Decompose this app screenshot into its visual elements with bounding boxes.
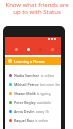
staticText: Shawn Malik — [14, 91, 36, 96]
staticText: is online — [41, 73, 55, 78]
staticText: is online — [35, 118, 49, 123]
button[interactable]: Tab — [22, 47, 34, 52]
button[interactable]: Nadia Sanchez — [5, 71, 61, 80]
staticText: last seen 3m — [40, 82, 61, 87]
button[interactable]: Shawn Malik — [5, 89, 61, 98]
staticText: Nadia Sanchez — [14, 73, 40, 78]
button[interactable]: Tab — [34, 47, 46, 52]
staticText: available — [37, 100, 52, 105]
staticText: Learning a Phrase — [14, 59, 45, 64]
button[interactable]: Learning a Phrase — [5, 57, 61, 65]
staticText: Mikhail Petrov — [14, 82, 39, 87]
button[interactable]: Raquel Ruiz — [5, 116, 61, 125]
button[interactable]: Tab — [46, 47, 58, 52]
button[interactable]: Tab — [10, 47, 22, 52]
button[interactable]: Peter Begley — [5, 98, 61, 107]
staticText: away 1h — [36, 109, 50, 114]
staticText: is typing — [37, 91, 51, 96]
button[interactable]: Anna Devlin — [5, 107, 61, 116]
staticText: Know what friends are up to with Status — [5, 1, 69, 16]
staticText: Peter Begley — [14, 100, 36, 105]
button[interactable]: Mikhail Petrov — [5, 80, 61, 89]
staticText: Anna Devlin — [14, 109, 35, 114]
staticText: Raquel Ruiz — [14, 118, 34, 123]
